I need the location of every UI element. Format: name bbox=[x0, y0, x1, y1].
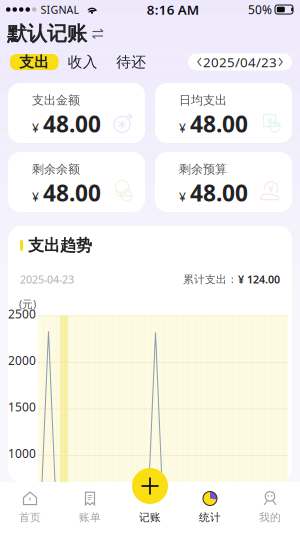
staticText: 2500 bbox=[8, 306, 36, 322]
button[interactable]: 账单 bbox=[60, 482, 120, 533]
staticText: 48.00 bbox=[43, 178, 101, 208]
button[interactable]: 首页 bbox=[0, 482, 60, 533]
staticText: 记账 bbox=[139, 511, 161, 524]
button[interactable]: 统计 bbox=[180, 482, 240, 533]
staticText: 支出 bbox=[19, 53, 49, 71]
button[interactable]: 记账 bbox=[132, 468, 168, 504]
button[interactable]: 我的 bbox=[240, 482, 300, 533]
staticText: 累计支出： bbox=[183, 273, 238, 286]
staticText: ¥ bbox=[179, 189, 186, 205]
staticText: 8:16 AM bbox=[147, 1, 199, 18]
button[interactable]: 支出 bbox=[10, 54, 58, 70]
staticText: 默认记账 bbox=[7, 21, 87, 46]
staticText: 2000 bbox=[8, 352, 36, 368]
staticText: 1500 bbox=[8, 399, 36, 415]
staticText: 账单 bbox=[79, 511, 101, 524]
staticText: ¥ bbox=[32, 120, 39, 136]
staticText: 支出金额 bbox=[32, 93, 80, 108]
staticText: ¥ 124.00 bbox=[238, 272, 280, 286]
staticText: 日均支出 bbox=[179, 93, 227, 108]
button[interactable]: 待还 bbox=[107, 54, 155, 70]
staticText: 剩余预算 bbox=[179, 162, 227, 177]
staticText: 统计 bbox=[199, 511, 221, 524]
staticText: 首页 bbox=[19, 511, 41, 524]
staticText: (元) bbox=[19, 297, 36, 311]
button[interactable]: 收入 bbox=[58, 54, 107, 70]
staticText: 剩余余额 bbox=[32, 162, 80, 177]
staticText: 2025-04-23 bbox=[20, 272, 74, 286]
button[interactable]: 记账 bbox=[120, 482, 180, 533]
staticText: 48.00 bbox=[190, 178, 248, 208]
staticText: 我的 bbox=[259, 511, 281, 524]
button[interactable]: 日均支出 bbox=[155, 83, 292, 143]
staticText: 待还 bbox=[116, 53, 146, 71]
button[interactable]: 剩余余额 bbox=[8, 152, 145, 212]
staticText: 50% bbox=[248, 1, 272, 17]
staticText: ¥ bbox=[179, 120, 186, 136]
staticText: 1000 bbox=[8, 445, 36, 461]
button[interactable]: 支出金额 bbox=[8, 83, 145, 143]
button[interactable]: 2025/04/23 bbox=[188, 53, 292, 70]
staticText: SIGNAL bbox=[40, 2, 79, 17]
staticText: ¥ bbox=[32, 189, 39, 205]
staticText: 收入 bbox=[68, 53, 98, 71]
button[interactable]: 切换账本 bbox=[92, 28, 105, 39]
staticText: 2025/04/23 bbox=[203, 53, 277, 71]
button[interactable]: 剩余预算 bbox=[155, 152, 292, 212]
staticText: 48.00 bbox=[43, 109, 101, 139]
staticText: 支出趋势 bbox=[28, 236, 92, 255]
staticText: 48.00 bbox=[190, 109, 248, 139]
